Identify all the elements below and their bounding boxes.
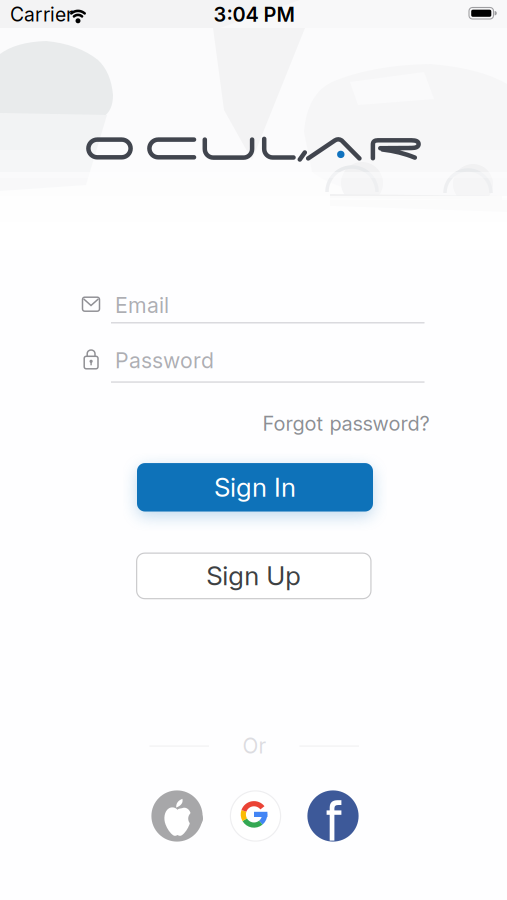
button[interactable]: Password [82, 350, 425, 384]
staticText: Forgot password? [262, 411, 429, 436]
button[interactable]: Forgot password? [189, 411, 429, 436]
staticText: Sign Up [206, 560, 301, 592]
staticText: Email [115, 292, 169, 318]
staticText: Password [115, 348, 214, 373]
button[interactable]: Sign in with Apple [151, 790, 203, 842]
staticText: Carrier [10, 3, 73, 26]
staticText: 3:04 PM [213, 2, 294, 27]
button[interactable]: Email [82, 295, 425, 325]
staticText: Sign In [214, 472, 296, 503]
staticText: Or [242, 733, 266, 758]
button[interactable]: Sign In [137, 463, 373, 512]
button[interactable]: Sign Up [136, 552, 372, 599]
button[interactable]: Sign in with Google [229, 790, 281, 842]
button[interactable]: Sign in with Facebook [307, 790, 359, 842]
